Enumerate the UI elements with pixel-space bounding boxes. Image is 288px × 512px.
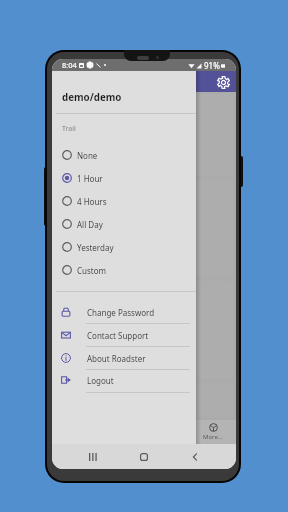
button[interactable] [52,281,233,379]
staticText: Yesterday [77,242,114,253]
button[interactable] [52,180,233,277]
button[interactable]: Home [133,446,155,468]
button[interactable]: None [52,144,196,166]
button[interactable]: Change Password [52,301,196,323]
button[interactable]: 4 Hours [52,190,196,212]
staticText: About Roadster [87,353,146,364]
staticText: More... [203,433,223,441]
button[interactable]: Contact Support [52,324,196,346]
button[interactable]: Yesterday [52,236,196,258]
staticText: All Day [77,219,103,230]
button[interactable]: About Roadster [52,347,196,369]
staticText: Custom [77,265,107,276]
button[interactable]: Recent apps [82,446,104,468]
staticText: demo/demo [62,91,122,104]
staticText: 91% [204,60,220,71]
button[interactable]: More... [196,423,230,441]
button[interactable]: 1 Hour [52,167,196,189]
button[interactable]: Logout [52,369,196,391]
staticText: 4 Hours [77,196,107,207]
staticText: Logout [87,375,114,386]
staticText: Change Password [87,307,155,318]
staticText: 8:04 [62,60,77,70]
button[interactable]: All Day [52,213,196,235]
staticText: None [77,150,98,161]
button[interactable]: Back [184,446,206,468]
button[interactable] [52,94,233,176]
staticText: 1 Hour [77,173,103,184]
button[interactable]: Settings [214,73,232,91]
button[interactable] [52,383,233,417]
staticText: Contact Support [87,330,149,341]
staticText: Trail [62,124,76,134]
button[interactable]: Custom [52,259,196,281]
